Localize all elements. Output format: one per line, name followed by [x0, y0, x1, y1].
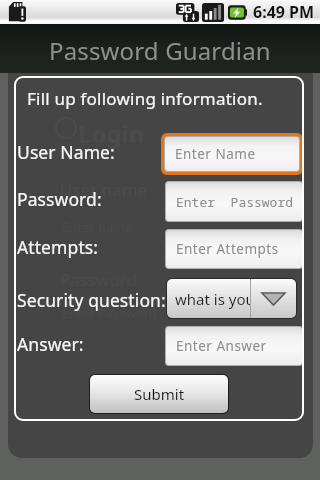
button[interactable]: Enter Attempts: [166, 230, 302, 268]
staticText: Security question:: [17, 288, 166, 312]
button[interactable]: Enter Name: [165, 137, 299, 171]
button[interactable]: Enter Answer: [166, 327, 302, 365]
staticText: Answer:: [17, 332, 84, 356]
staticText: Fill up following information.: [27, 87, 263, 110]
staticText: Enter Answer: [176, 337, 267, 355]
button[interactable]: Enter Password: [166, 182, 302, 221]
staticText: Submit: [134, 384, 185, 404]
staticText: User Name:: [17, 140, 115, 164]
other: Open dropdown: [251, 279, 296, 318]
staticText: User name: [60, 178, 148, 201]
staticText: 6:49 PM: [253, 1, 315, 23]
staticText: Login: [78, 117, 145, 150]
button[interactable]: Submit: [90, 375, 228, 413]
staticText: Password Guardian: [49, 34, 271, 67]
staticText: Password:: [17, 187, 102, 211]
staticText: Enter Name: [175, 145, 256, 163]
staticText: Attempts:: [17, 235, 99, 259]
staticText: Enter Password: [176, 193, 294, 211]
staticText: Enter Password: [62, 304, 157, 322]
button[interactable]: what is your: [167, 279, 296, 318]
staticText: Enter Attempts: [176, 240, 279, 258]
staticText: what is your: [175, 289, 250, 309]
